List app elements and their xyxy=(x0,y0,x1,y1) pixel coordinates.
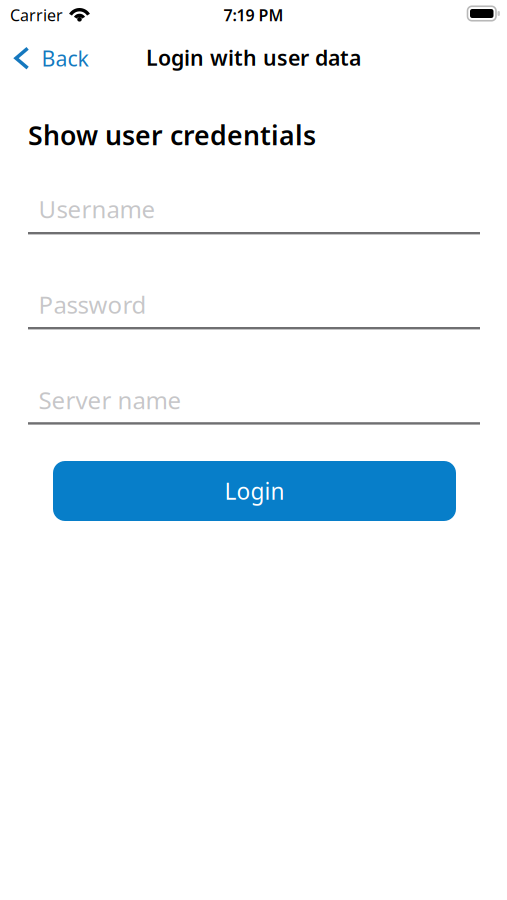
staticText: Back xyxy=(41,44,88,72)
staticText: Carrier xyxy=(10,4,63,26)
button[interactable]: Back xyxy=(14,44,88,72)
staticText: Login xyxy=(224,476,284,506)
button[interactable]: Login xyxy=(53,461,456,521)
staticText: Login with user data xyxy=(146,43,361,71)
staticText: Password xyxy=(38,288,146,320)
staticText: Show user credentials xyxy=(28,117,316,152)
staticText: Server name xyxy=(38,384,181,416)
staticText: 7:19 PM xyxy=(223,4,283,26)
staticText: Username xyxy=(38,193,155,225)
